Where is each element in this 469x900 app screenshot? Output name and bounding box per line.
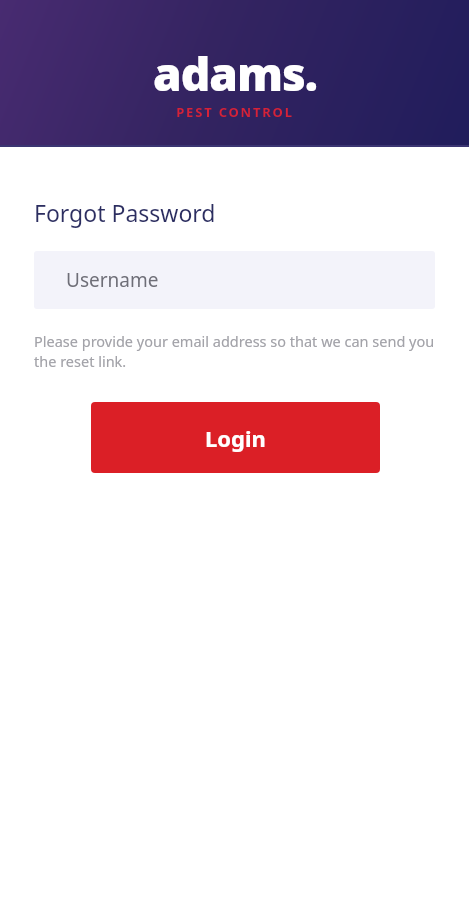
- staticText: Forgot Password: [34, 197, 216, 228]
- button[interactable]: Login: [91, 402, 380, 473]
- button[interactable]: Username: [34, 251, 435, 309]
- staticText: Username: [66, 267, 159, 293]
- staticText: adams.: [153, 42, 317, 105]
- staticText: PEST CONTROL: [176, 103, 294, 121]
- staticText: Login: [205, 423, 266, 453]
- staticText: Please provide your email address so tha…: [34, 331, 436, 372]
- other: Adams Pest Control logo: [153, 42, 317, 123]
